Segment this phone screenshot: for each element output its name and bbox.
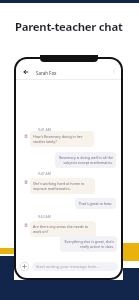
staticText: How's Rosemary doing in her studies late… <box>33 134 91 144</box>
staticText: She's working hard at home to improve ma… <box>33 181 92 191</box>
staticText: Are there any areas she needs to work on… <box>33 224 93 234</box>
button[interactable]: Everything else is great, she's really a… <box>60 236 117 252</box>
button[interactable]: Are there any areas she needs to work on… <box>30 221 96 237</box>
staticText: Start writing your message here... <box>36 264 100 269</box>
staticText: That's great to hear. <box>78 201 112 206</box>
staticText: 9:52 AM <box>38 214 51 219</box>
button[interactable]: She's working hard at home to improve ma… <box>30 178 95 194</box>
staticText: 9:47 AM <box>38 171 51 176</box>
button[interactable]: More options <box>109 66 118 75</box>
button[interactable]: How's Rosemary doing in her studies late… <box>30 131 94 147</box>
button[interactable]: Add attachment <box>19 261 30 272</box>
staticText: Rosemary is doing well in all the subjec… <box>58 155 113 165</box>
staticText: Everything else is great, she's really a… <box>63 239 114 249</box>
button[interactable]: Rosemary is doing well in all the subjec… <box>55 152 116 168</box>
staticText: 9:41 AM <box>38 127 51 132</box>
staticText: Parent-teacher chat <box>15 19 123 34</box>
button[interactable]: Start writing your message here... <box>32 262 118 271</box>
button[interactable]: That's great to hear. <box>75 198 116 209</box>
staticText: Sarah Fox <box>36 70 57 76</box>
button[interactable]: Back <box>21 67 31 77</box>
